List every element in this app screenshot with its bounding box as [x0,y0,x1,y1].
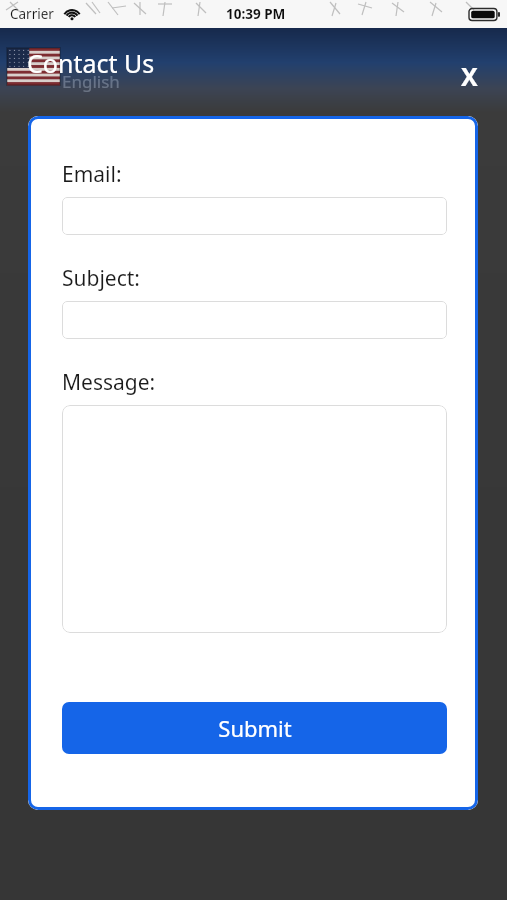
staticText: Email: [62,160,122,189]
staticText: Subject: [62,264,140,293]
staticText: Submit [218,713,292,743]
button[interactable]: Text input field [62,301,447,339]
button[interactable]: Submit [62,702,447,754]
other: Wi-Fi signal [63,7,81,21]
staticText: X [461,59,478,93]
button[interactable]: Close [445,52,493,100]
staticText: Message: [62,368,156,397]
button[interactable]: Text input field [62,405,447,633]
staticText: Carrier [10,5,54,23]
button[interactable]: Text input field [62,197,447,235]
staticText: 10:39 PM [226,5,286,23]
staticText: Contact Us [27,46,155,80]
staticText: English [62,70,120,93]
other: Battery full [469,7,500,22]
